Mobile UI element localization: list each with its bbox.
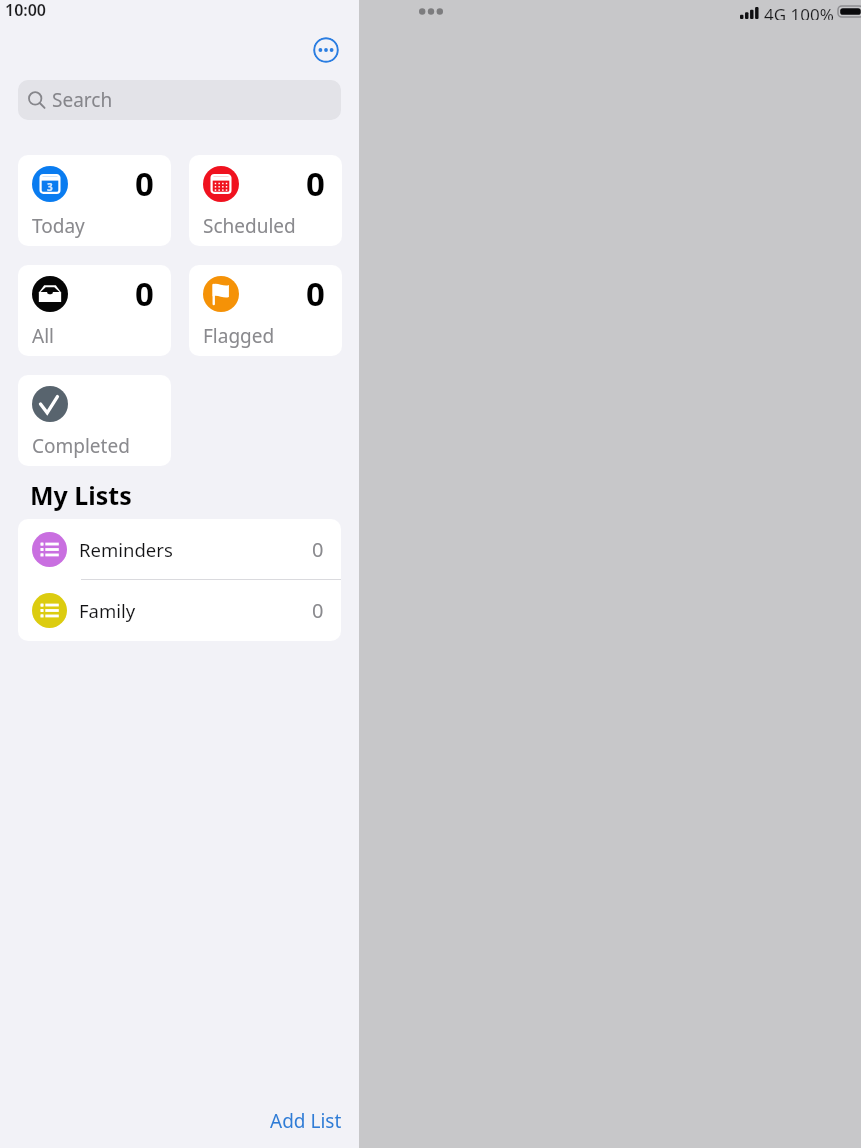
staticText: 10:00: [5, 0, 47, 21]
staticText: 0: [135, 271, 154, 316]
staticText: 0: [306, 271, 325, 316]
staticText: 0: [312, 536, 324, 563]
staticText: My Lists: [30, 478, 132, 512]
staticText: Scheduled: [203, 213, 296, 239]
button[interactable]: 0: [189, 155, 342, 246]
button[interactable]: Search: [18, 80, 341, 120]
staticText: Family: [79, 598, 136, 623]
button[interactable]: 0: [18, 265, 171, 356]
staticText: Search: [52, 87, 113, 113]
staticText: All: [32, 323, 54, 349]
button[interactable]: Completed: [18, 375, 171, 466]
staticText: 0: [312, 597, 324, 624]
staticText: Flagged: [203, 323, 275, 349]
staticText: Completed: [32, 433, 130, 459]
staticText: Reminders: [79, 537, 173, 562]
button[interactable]: Add List: [258, 1101, 354, 1141]
staticText: 4G 100%: [764, 3, 834, 20]
button[interactable]: Family: [18, 580, 341, 641]
button[interactable]: More options: [313, 37, 339, 63]
button[interactable]: Reminders: [18, 519, 341, 580]
button[interactable]: 3: [18, 155, 171, 246]
staticText: 0: [135, 161, 154, 206]
staticText: Today: [32, 213, 85, 239]
button[interactable]: 0: [189, 265, 342, 356]
staticText: 3: [47, 180, 53, 194]
staticText: 0: [306, 161, 325, 206]
staticText: Add List: [270, 1108, 342, 1134]
